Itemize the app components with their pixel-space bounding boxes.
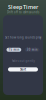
staticText: 15 min [8,48,19,51]
staticText: Fades out gently [11,59,34,63]
staticText: Sleep Timer [8,3,38,10]
staticText: Set how long sounds play [5,36,41,39]
staticText: 30 min [27,48,38,51]
staticText: Drift off to calm sounds [7,10,39,14]
button[interactable]: 30 min [25,48,40,52]
staticText: Start [20,68,26,71]
button[interactable]: 15 min [6,48,21,52]
button[interactable]: Start [8,67,38,71]
